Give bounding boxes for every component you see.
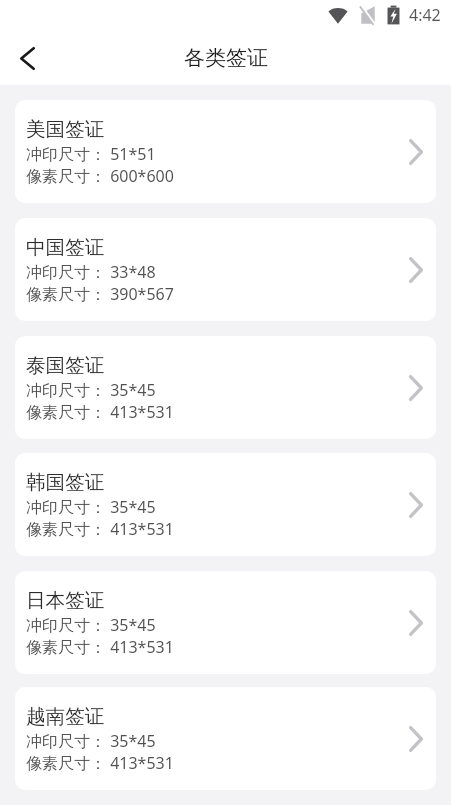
button[interactable]: Back [2, 33, 52, 83]
staticText: 像素尺寸： 413*531 [26, 401, 174, 423]
staticText: 像素尺寸： 413*531 [26, 636, 174, 658]
staticText: 日本签证 [26, 588, 105, 613]
staticText: 冲印尺寸： 35*45 [26, 379, 156, 401]
staticText: 泰国签证 [26, 353, 105, 378]
staticText: 像素尺寸： 600*600 [26, 165, 174, 187]
staticText: 冲印尺寸： 35*45 [26, 496, 156, 518]
staticText: 越南签证 [26, 704, 105, 729]
staticText: 冲印尺寸： 51*51 [26, 143, 156, 165]
staticText: 冲印尺寸： 35*45 [26, 730, 156, 752]
button[interactable]: 日本签证 [15, 571, 436, 674]
button[interactable]: 美国签证 [15, 100, 436, 203]
staticText: 像素尺寸： 413*531 [26, 518, 174, 540]
staticText: 像素尺寸： 390*567 [26, 283, 174, 305]
button[interactable]: 韩国签证 [15, 453, 436, 556]
staticText: 冲印尺寸： 33*48 [26, 261, 156, 283]
staticText: 4:42 [409, 4, 441, 26]
staticText: 中国签证 [26, 235, 105, 260]
button[interactable]: 中国签证 [15, 218, 436, 321]
staticText: 美国签证 [26, 117, 105, 142]
staticText: 各类签证 [184, 45, 268, 71]
staticText: 像素尺寸： 413*531 [26, 752, 174, 774]
staticText: 韩国签证 [26, 470, 105, 495]
button[interactable]: 泰国签证 [15, 336, 436, 439]
staticText: 冲印尺寸： 35*45 [26, 614, 156, 636]
button[interactable]: 越南签证 [15, 687, 436, 790]
